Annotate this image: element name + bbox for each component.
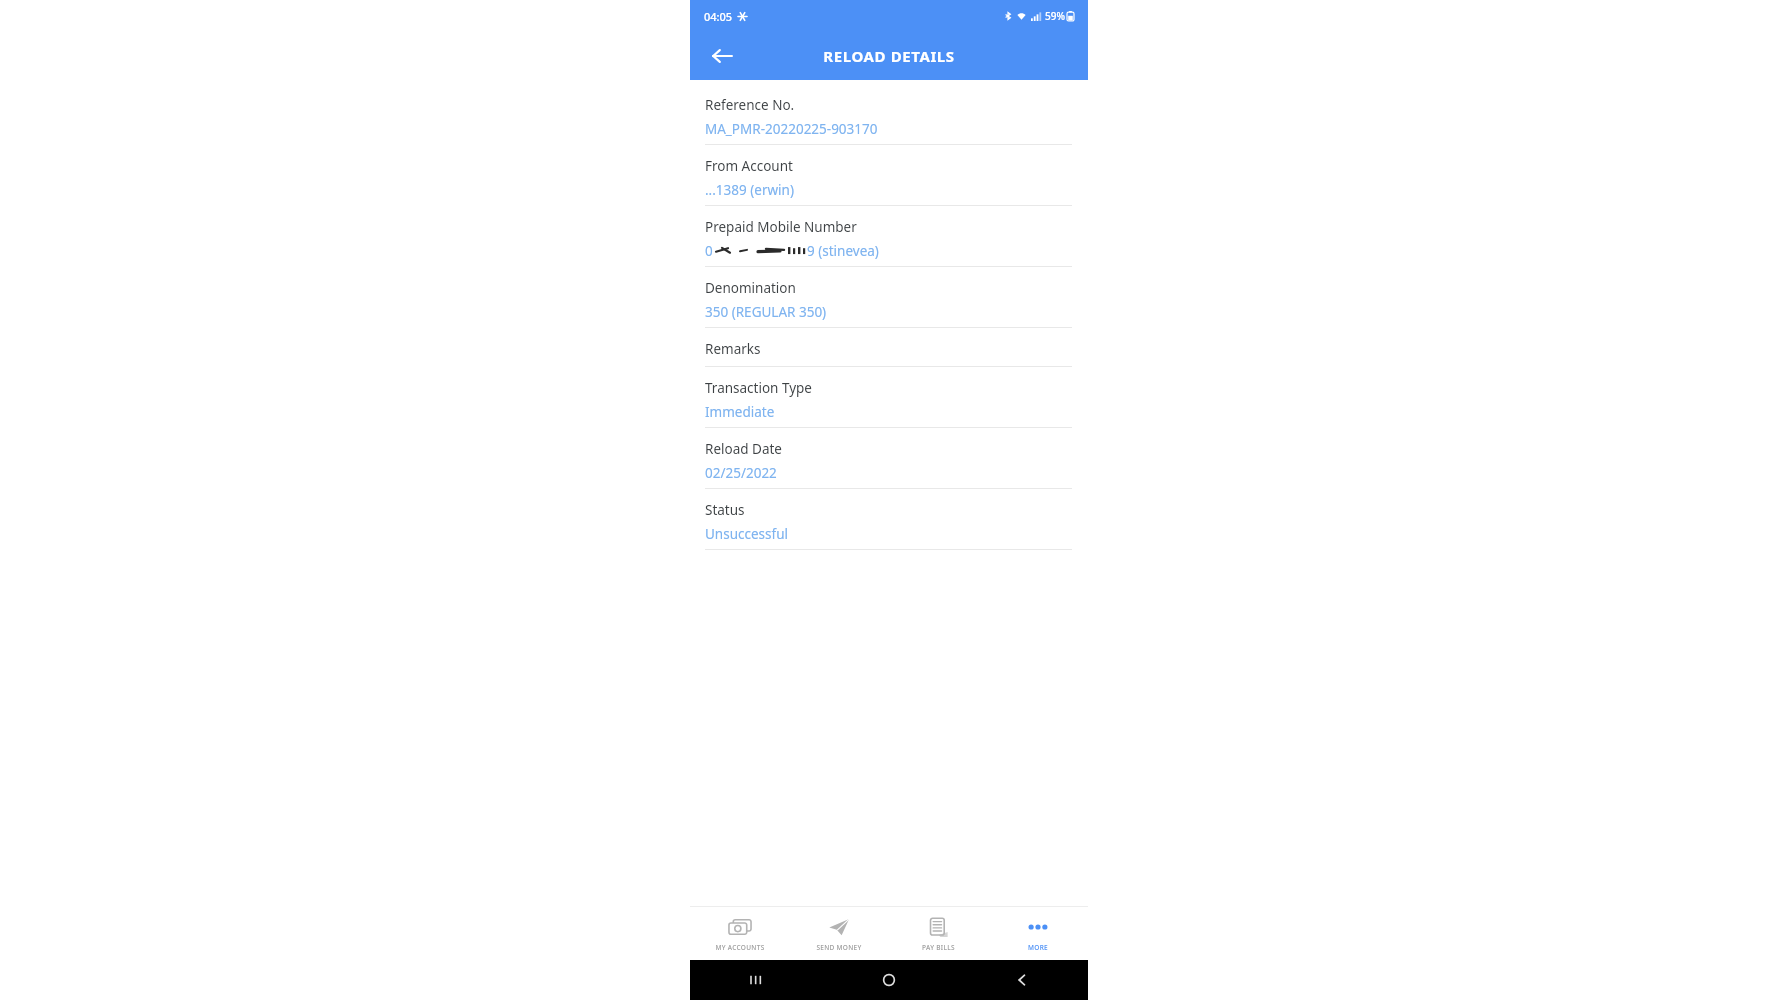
- button[interactable]: PAY BILLS: [888, 907, 988, 960]
- staticText: PAY BILLS: [922, 943, 955, 952]
- staticText: 59%: [1045, 9, 1065, 23]
- staticText: Unsuccessful: [705, 525, 788, 543]
- staticText: Remarks: [705, 340, 761, 358]
- button[interactable]: Reference No.: [690, 80, 1088, 145]
- button[interactable]: Remarks: [690, 328, 1088, 367]
- button[interactable]: SEND MONEY: [789, 907, 888, 960]
- button[interactable]: Transaction Type: [690, 367, 1088, 428]
- staticText: MORE: [1028, 943, 1048, 952]
- button[interactable]: Reload Date: [690, 428, 1088, 489]
- staticText: ...1389 (erwin): [705, 181, 794, 199]
- staticText: Denomination: [705, 279, 796, 297]
- button[interactable]: From Account: [690, 145, 1088, 206]
- button[interactable]: Home: [822, 960, 955, 1000]
- staticText: MA_PMR-20220225-903170: [705, 120, 878, 138]
- button[interactable]: Denomination: [690, 267, 1088, 328]
- staticText: RELOAD DETAILS: [823, 46, 955, 66]
- staticText: SEND MONEY: [816, 943, 862, 952]
- staticText: MY ACCOUNTS: [715, 943, 765, 952]
- staticText: 02/25/2022: [705, 464, 777, 482]
- button[interactable]: Status: [690, 489, 1088, 550]
- staticText: Status: [705, 501, 745, 519]
- staticText: Immediate: [705, 403, 775, 421]
- staticText: 0: [705, 242, 713, 260]
- staticText: 9 (stinevea): [807, 242, 879, 260]
- button[interactable]: Prepaid Mobile Number: [690, 206, 1088, 267]
- button[interactable]: MY ACCOUNTS: [690, 907, 789, 960]
- button[interactable]: MORE: [988, 907, 1088, 960]
- staticText: Reload Date: [705, 440, 782, 458]
- staticText: Prepaid Mobile Number: [705, 218, 857, 236]
- button[interactable]: Back: [702, 36, 742, 76]
- button[interactable]: Recent apps: [690, 960, 822, 1000]
- staticText: 350 (REGULAR 350): [705, 303, 827, 321]
- staticText: From Account: [705, 157, 793, 175]
- button[interactable]: Back: [955, 960, 1088, 1000]
- staticText: 04:05: [704, 9, 733, 24]
- staticText: Transaction Type: [705, 379, 812, 397]
- staticText: Reference No.: [705, 96, 795, 114]
